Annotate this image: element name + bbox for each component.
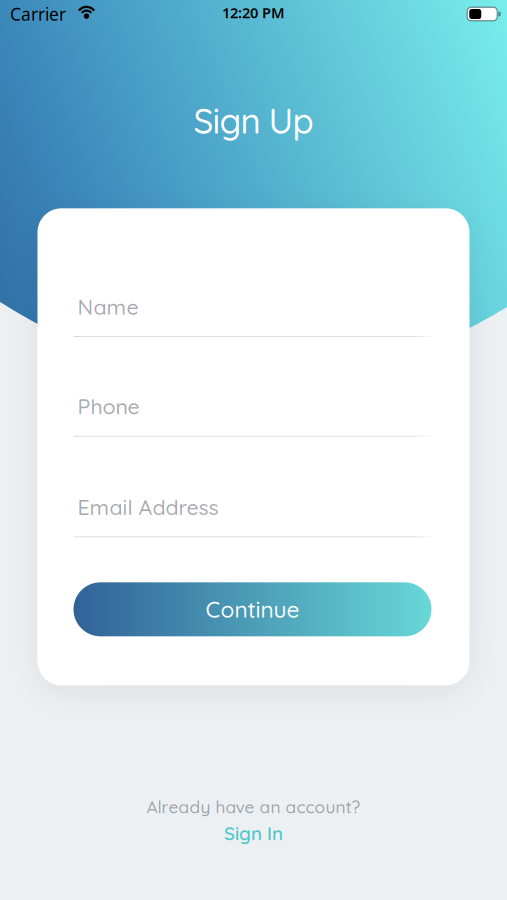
staticText: Email Address	[77, 494, 218, 520]
button[interactable]: Continue	[73, 582, 431, 636]
button[interactable]: Name	[73, 293, 433, 337]
staticText: Already have an account?	[146, 796, 360, 818]
staticText: Name	[77, 293, 138, 320]
staticText: Sign Up	[193, 99, 313, 142]
staticText: Phone	[77, 393, 139, 420]
staticText: 12:20 PM	[222, 3, 285, 22]
button[interactable]: Phone	[73, 393, 433, 437]
staticText: Sign In	[224, 822, 283, 845]
staticText: Continue	[205, 595, 299, 623]
button[interactable]: Email Address	[73, 494, 433, 537]
button[interactable]: Sign In	[224, 822, 283, 845]
staticText: Carrier	[10, 2, 66, 25]
